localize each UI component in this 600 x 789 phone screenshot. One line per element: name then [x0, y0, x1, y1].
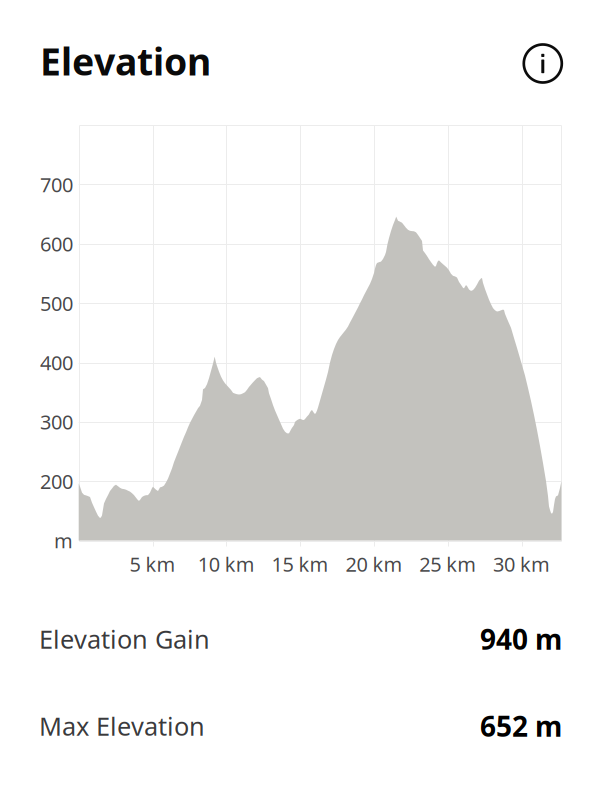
- button[interactable]: Info: [521, 41, 565, 85]
- staticText: 300: [40, 409, 73, 435]
- staticText: 15 km: [272, 551, 329, 577]
- staticText: 30 km: [493, 551, 550, 577]
- staticText: 10 km: [198, 551, 255, 577]
- staticText: Max Elevation: [39, 709, 205, 743]
- staticText: 500: [40, 290, 73, 316]
- staticText: m: [54, 527, 73, 554]
- staticText: 400: [40, 349, 73, 376]
- staticText: 600: [40, 231, 73, 257]
- staticText: Elevation Gain: [39, 622, 210, 656]
- staticText: 5 km: [129, 551, 175, 577]
- staticText: 25 km: [419, 551, 476, 577]
- button[interactable]: Elevation Gain: [0, 611, 600, 667]
- button[interactable]: Max Elevation: [0, 698, 600, 754]
- staticText: 940 m: [480, 620, 562, 658]
- staticText: 200: [40, 468, 73, 494]
- staticText: Elevation: [40, 36, 211, 86]
- staticText: 652 m: [480, 707, 562, 745]
- staticText: 20 km: [345, 551, 402, 577]
- staticText: 700: [40, 171, 73, 198]
